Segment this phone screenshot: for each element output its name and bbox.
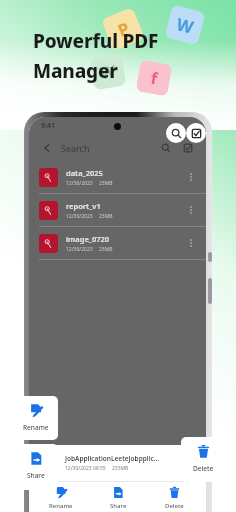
button[interactable]: report_v1 <box>29 194 206 226</box>
staticText: 12/30/2023 <box>66 246 93 253</box>
button[interactable]: Select all <box>186 123 206 143</box>
staticText: Share <box>110 502 127 510</box>
staticText: W <box>174 12 196 39</box>
staticText: report_v1 <box>66 201 101 211</box>
button[interactable]: image_0720 <box>29 227 206 259</box>
staticText: image_0720 <box>66 234 110 244</box>
staticText: f <box>149 67 160 89</box>
button[interactable]: Search <box>158 140 174 156</box>
staticText: 23MB <box>99 213 113 220</box>
staticText: Share <box>27 471 45 480</box>
button[interactable]: More options <box>184 203 198 217</box>
staticText: W <box>98 60 118 84</box>
button[interactable]: Search <box>166 123 186 143</box>
button[interactable]: Share <box>14 444 58 490</box>
button[interactable]: More options <box>184 236 198 250</box>
button[interactable]: Back <box>39 140 55 156</box>
staticText: 12/30/2023 <box>66 213 93 220</box>
staticText: 9:41 <box>41 121 55 131</box>
staticText: 12/30/2023 09:55 <box>65 465 106 472</box>
button[interactable]: data_2025 <box>29 161 206 193</box>
staticText: JobApplicationLeeteJobpplic... <box>65 454 160 463</box>
staticText: Powerful PDF <box>33 28 159 54</box>
staticText: 233MB <box>112 465 129 472</box>
button[interactable]: Rename <box>37 482 85 512</box>
staticText: Search <box>61 142 90 154</box>
staticText: Rename <box>23 423 49 432</box>
staticText: Delete <box>165 502 184 510</box>
staticText: Delete <box>193 464 214 473</box>
staticText: data_2025 <box>66 168 103 178</box>
staticText: 12/30/2023 <box>66 180 93 187</box>
button[interactable]: Share <box>94 482 142 512</box>
button[interactable]: More options <box>184 170 198 184</box>
button[interactable]: Rename <box>14 396 58 440</box>
button[interactable]: Delete <box>181 437 225 482</box>
staticText: Manager <box>33 58 118 84</box>
staticText: Rename <box>49 502 73 510</box>
button[interactable]: Select all <box>180 140 196 156</box>
button[interactable]: Delete <box>150 482 198 512</box>
staticText: 23MB <box>99 246 113 253</box>
staticText: 23MB <box>99 180 113 187</box>
staticText: P <box>114 17 133 42</box>
button[interactable]: JobApplicationLeeteJobpplic... <box>29 445 206 481</box>
